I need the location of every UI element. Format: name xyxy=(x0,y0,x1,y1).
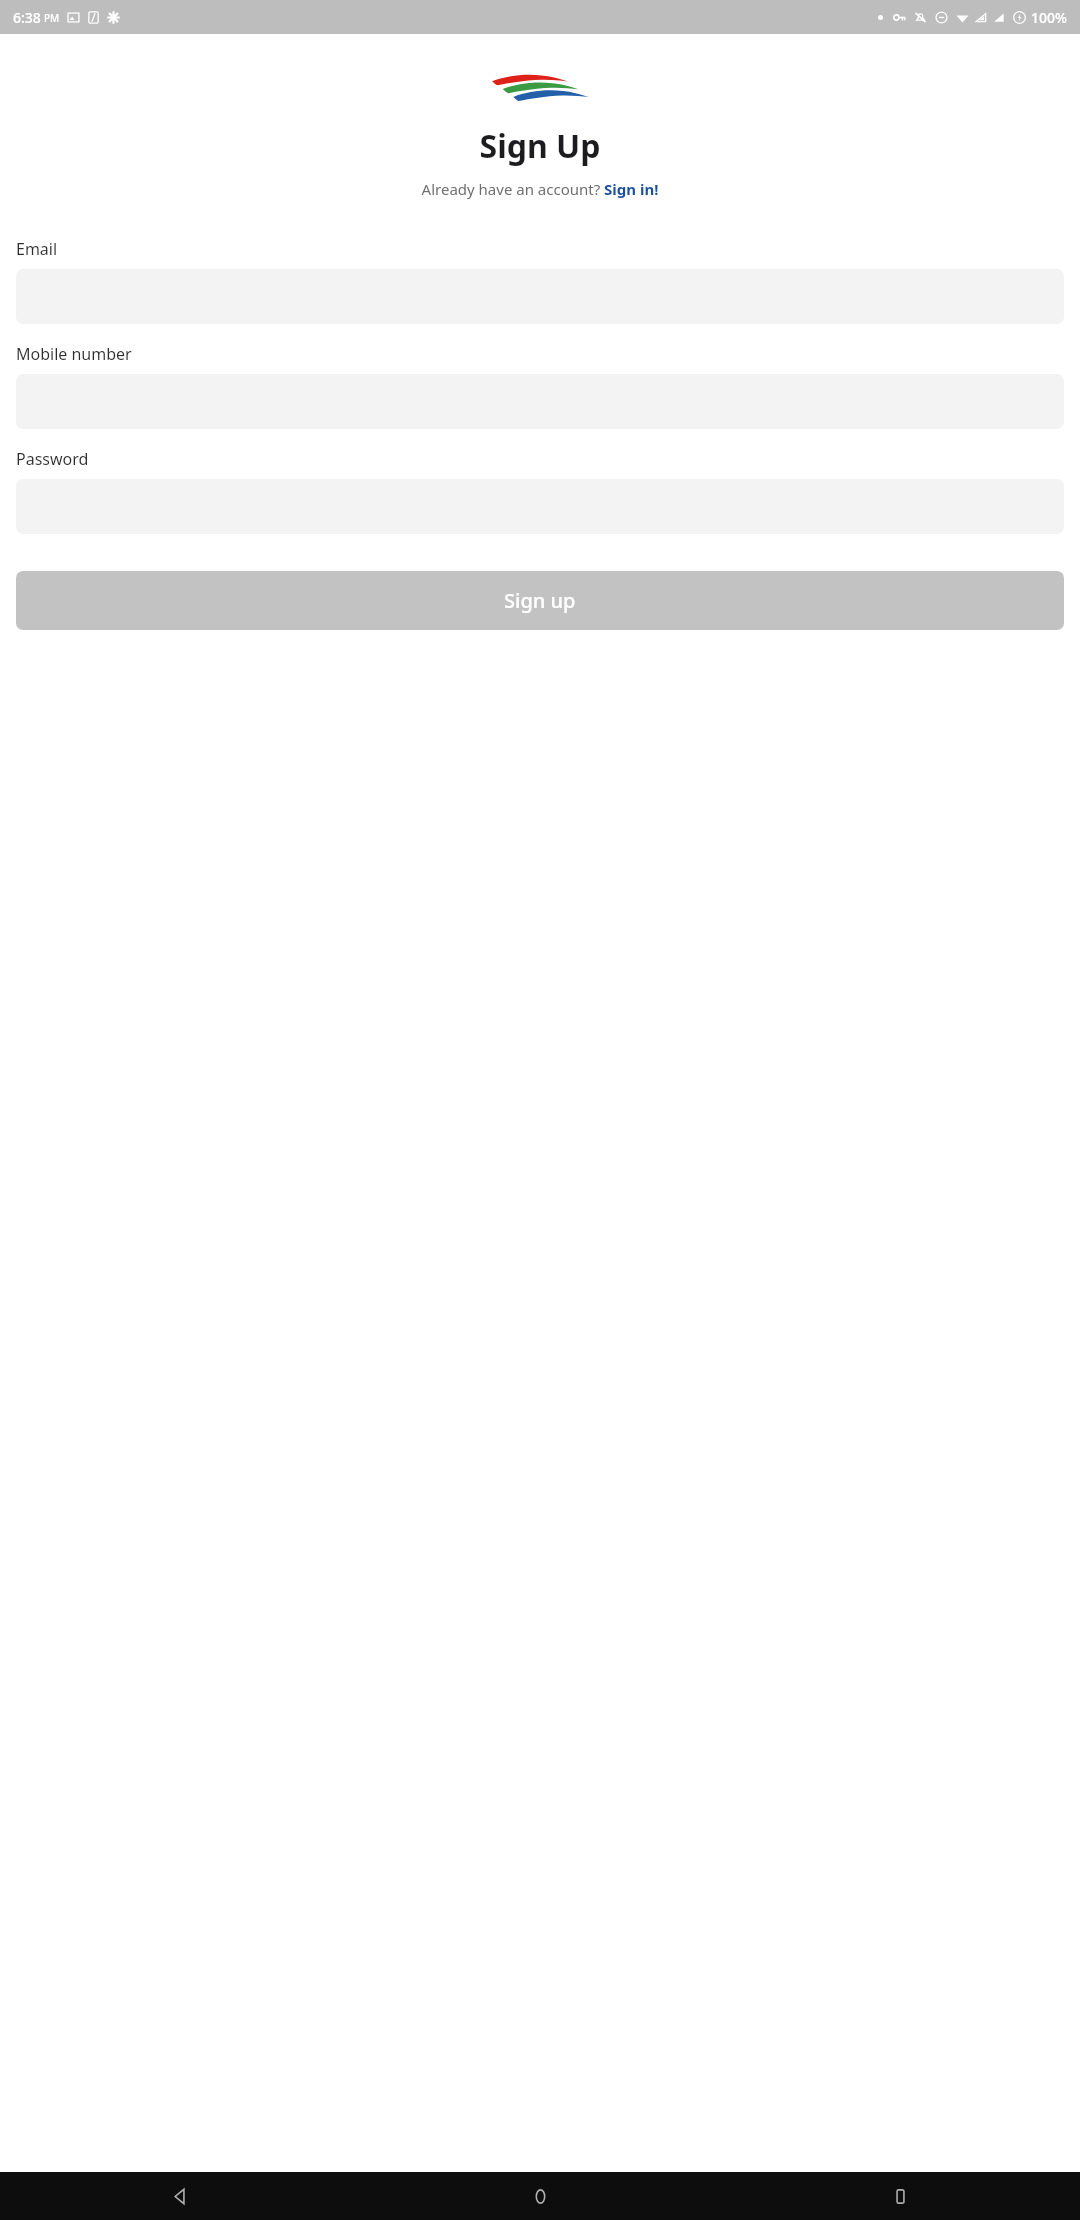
button[interactable]: Recent apps xyxy=(720,2172,1080,2220)
button[interactable]: Already have an account? Sign in! xyxy=(0,179,1080,199)
button[interactable]: Home xyxy=(360,2172,720,2220)
button[interactable]: Back xyxy=(0,2172,360,2220)
staticText: 6:38 xyxy=(13,8,41,27)
staticText: Sign Up xyxy=(0,124,1080,168)
staticText: 100% xyxy=(1031,8,1067,27)
staticText: Email xyxy=(16,238,58,260)
staticText: Sign up xyxy=(504,587,576,614)
button[interactable]: Sign up xyxy=(16,571,1064,630)
staticText: PM xyxy=(44,11,60,25)
staticText: Mobile number xyxy=(16,343,132,365)
staticText: Password xyxy=(16,448,89,470)
